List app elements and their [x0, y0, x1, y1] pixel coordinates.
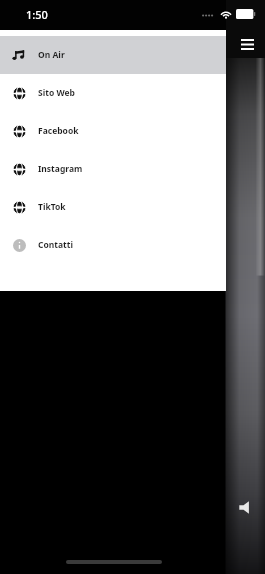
staticText: Sito Web: [38, 87, 75, 99]
staticText: 1:50: [26, 7, 48, 22]
button[interactable]: Open navigation menu: [231, 30, 263, 58]
button[interactable]: Facebook: [0, 112, 226, 150]
button[interactable]: Instagram: [0, 150, 226, 188]
staticText: Instagram: [38, 163, 83, 175]
staticText: TikTok: [38, 201, 66, 213]
button[interactable]: On Air: [0, 36, 226, 74]
staticText: Facebook: [38, 125, 79, 137]
button[interactable]: TikTok: [0, 188, 226, 226]
button[interactable]: Volume: [233, 494, 259, 520]
staticText: Contatti: [38, 239, 73, 251]
staticText: On Air: [38, 49, 65, 61]
button[interactable]: Sito Web: [0, 74, 226, 112]
button[interactable]: Contatti: [0, 226, 226, 264]
